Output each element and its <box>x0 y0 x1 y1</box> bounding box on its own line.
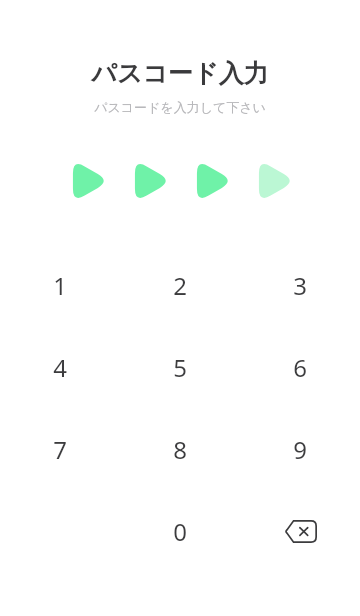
staticText: パスコード入力 <box>0 58 360 89</box>
button[interactable]: 3 <box>240 244 360 326</box>
staticText: 7 <box>53 433 67 466</box>
staticText: 5 <box>173 351 187 384</box>
button[interactable]: Backspace <box>240 490 360 572</box>
staticText: 6 <box>293 351 307 384</box>
staticText: 1 <box>53 269 67 302</box>
staticText: 0 <box>173 515 187 548</box>
button[interactable]: 8 <box>120 408 240 490</box>
button[interactable]: 5 <box>120 326 240 408</box>
button[interactable]: 9 <box>240 408 360 490</box>
button[interactable]: 0 <box>120 490 240 572</box>
button[interactable]: 6 <box>240 326 360 408</box>
staticText: 9 <box>293 433 307 466</box>
button[interactable]: 7 <box>0 408 120 490</box>
button[interactable]: 2 <box>120 244 240 326</box>
staticText: 2 <box>173 269 187 302</box>
staticText: 8 <box>173 433 187 466</box>
staticText: 3 <box>293 269 307 302</box>
staticText: 4 <box>53 351 67 384</box>
staticText: パスコードを入力して下さい <box>0 99 360 115</box>
button[interactable]: 4 <box>0 326 120 408</box>
button[interactable]: 1 <box>0 244 120 326</box>
